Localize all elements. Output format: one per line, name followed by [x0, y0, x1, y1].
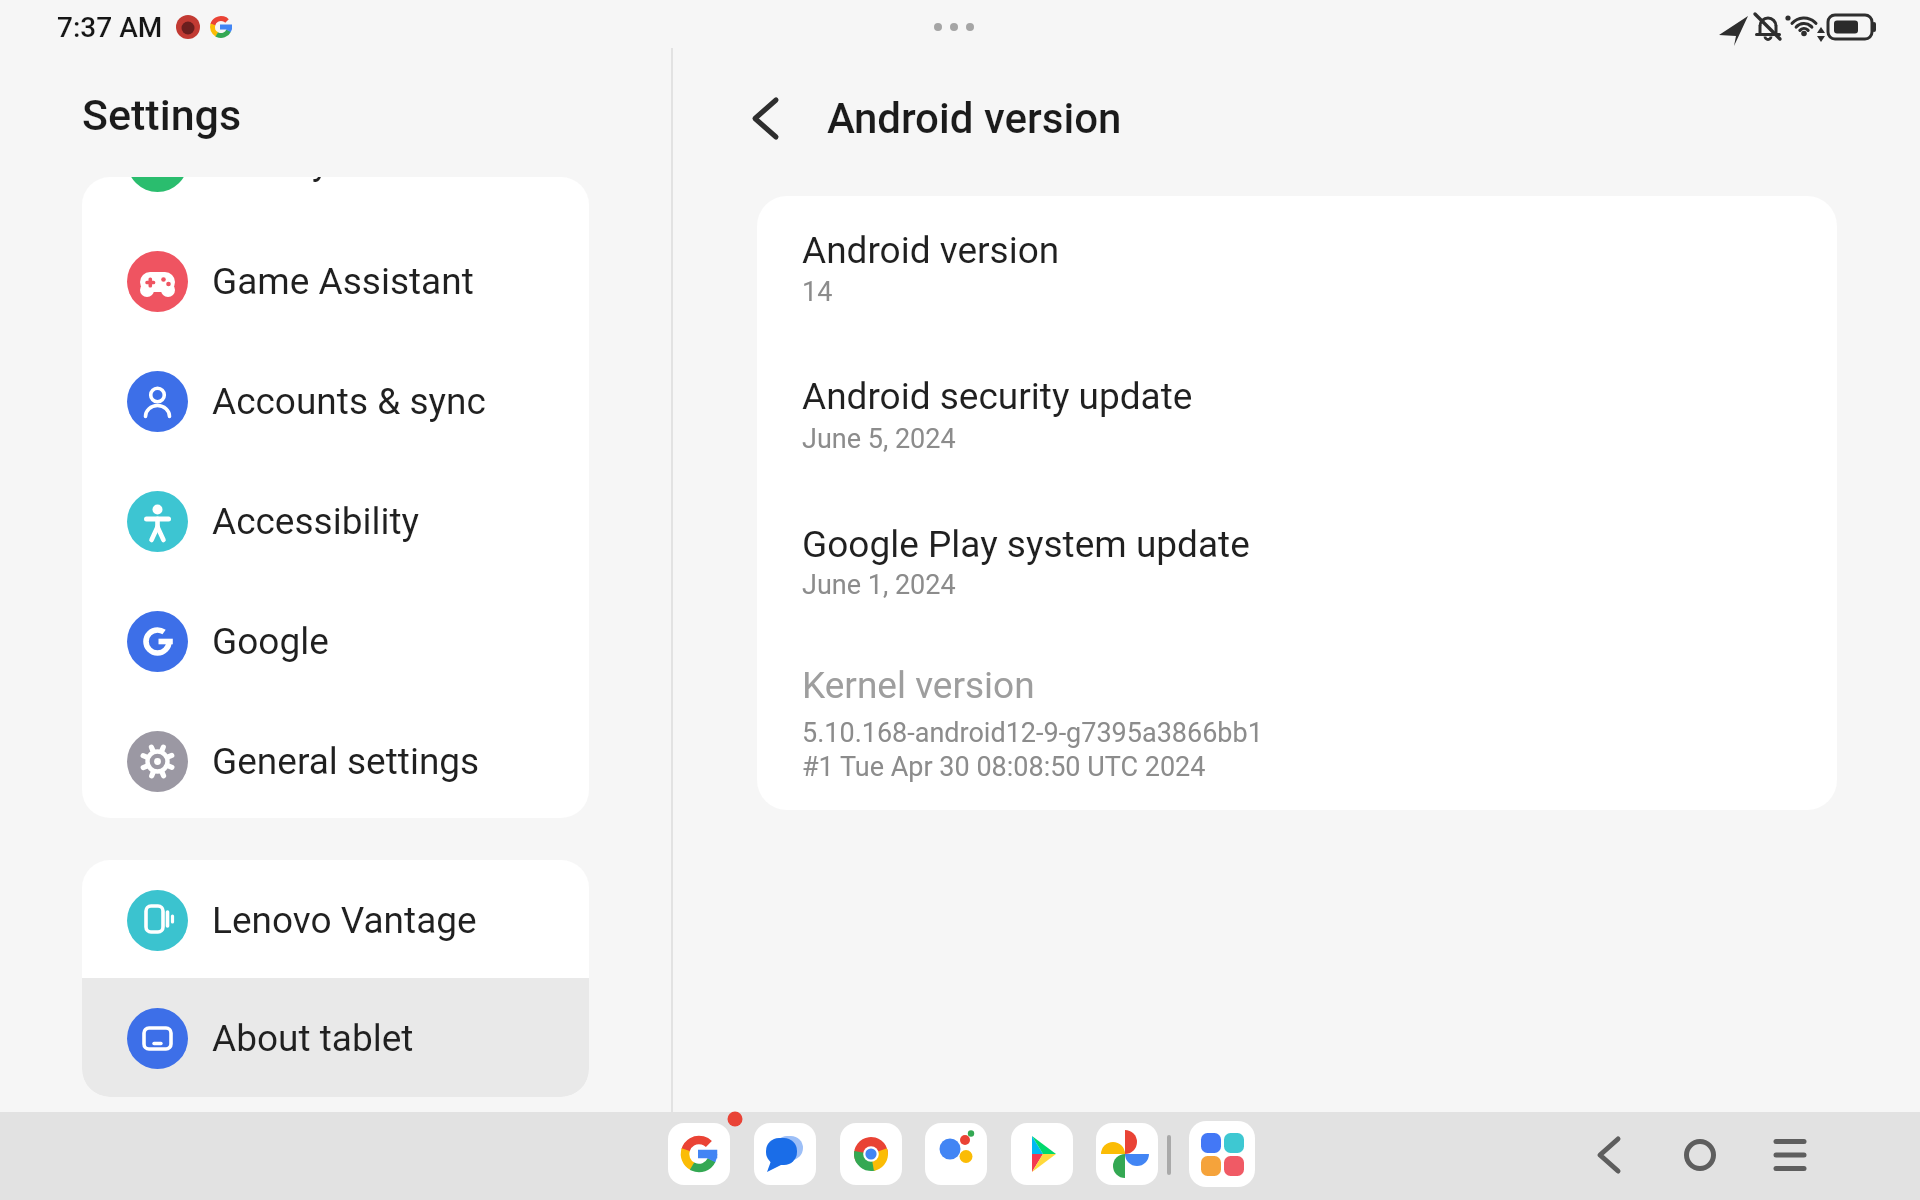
staticText: Game Assistant — [212, 260, 474, 303]
button[interactable]: General settings — [82, 701, 589, 818]
button[interactable] — [757, 496, 1837, 636]
staticText: 7:37 AM — [57, 11, 163, 44]
staticText: Google — [212, 620, 329, 663]
staticText: June 1, 2024 — [802, 569, 956, 601]
button[interactable]: Game Assistant — [82, 221, 589, 341]
staticText: June 5, 2024 — [802, 423, 956, 455]
staticText: 5.10.168-android12-9-g7395a3866bb1 — [802, 717, 1263, 749]
staticText: Kernel version — [802, 664, 1035, 707]
button[interactable] — [746, 99, 786, 139]
staticText: Accessibility — [212, 500, 420, 543]
button[interactable] — [840, 1123, 902, 1185]
button[interactable] — [757, 204, 1837, 344]
staticText: Settings — [82, 90, 242, 140]
staticText: #1 Tue Apr 30 08:08:50 UTC 2024 — [802, 751, 1206, 783]
staticText: Battery — [212, 177, 330, 183]
button[interactable] — [1011, 1123, 1073, 1185]
button[interactable]: About tablet — [82, 978, 589, 1097]
button[interactable]: Accessibility — [82, 461, 589, 581]
staticText: Android version — [827, 94, 1122, 143]
button[interactable] — [754, 1123, 816, 1185]
staticText: Accounts & sync — [212, 380, 486, 423]
button[interactable] — [757, 350, 1837, 490]
button[interactable] — [1189, 1121, 1255, 1187]
button[interactable]: Battery — [82, 177, 589, 221]
staticText: Android version — [802, 229, 1060, 272]
button[interactable] — [1590, 1135, 1630, 1175]
button[interactable] — [925, 1123, 987, 1185]
button[interactable]: Lenovo Vantage — [82, 860, 589, 980]
button[interactable] — [757, 642, 1837, 802]
button[interactable]: Accounts & sync — [82, 341, 589, 461]
staticText: General settings — [212, 740, 480, 783]
button[interactable]: Google — [82, 581, 589, 701]
staticText: 14 — [802, 276, 833, 308]
staticText: Lenovo Vantage — [212, 899, 477, 942]
button[interactable] — [668, 1123, 730, 1185]
staticText: Android security update — [802, 375, 1193, 418]
button[interactable] — [1770, 1135, 1810, 1175]
staticText: About tablet — [212, 1017, 414, 1060]
staticText: Google Play system update — [802, 523, 1250, 566]
button[interactable] — [1096, 1123, 1158, 1185]
button[interactable] — [1680, 1135, 1720, 1175]
